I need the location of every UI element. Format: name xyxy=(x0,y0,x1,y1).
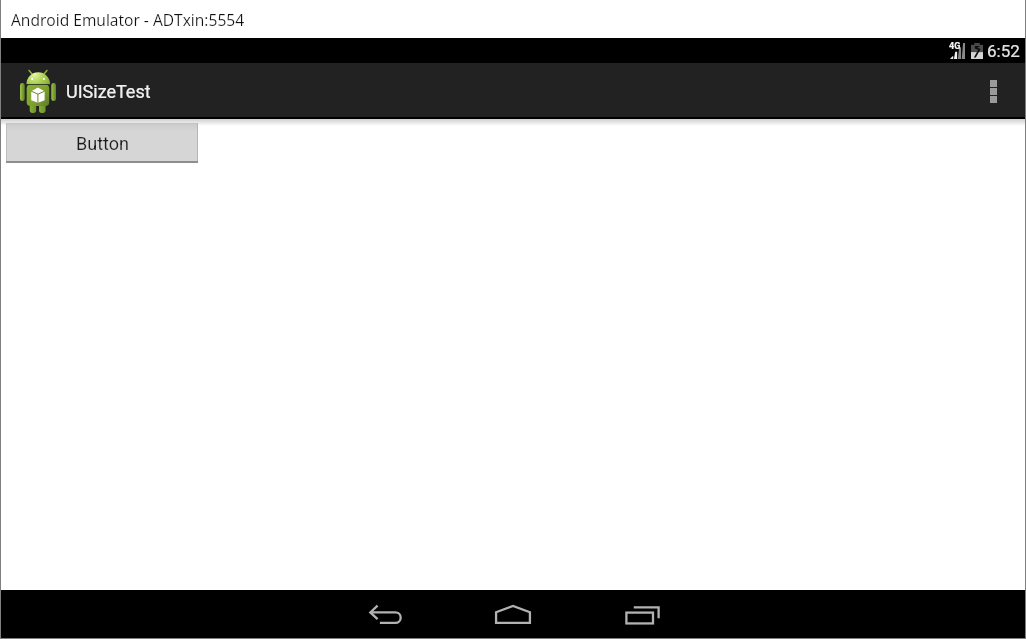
button[interactable]: Recent apps xyxy=(621,598,663,630)
staticText: Android Emulator - ADTxin:5554 xyxy=(11,9,245,30)
button[interactable]: Back xyxy=(364,598,406,630)
button[interactable]: More options xyxy=(961,63,1025,119)
staticText: 6:52 xyxy=(987,41,1020,61)
staticText: Button xyxy=(76,133,129,154)
button[interactable]: UISizeTest xyxy=(1,63,165,119)
button[interactable]: Button xyxy=(6,123,198,163)
button[interactable]: Home xyxy=(492,598,534,630)
staticText: 4G xyxy=(949,41,961,52)
staticText: UISizeTest xyxy=(66,81,151,102)
